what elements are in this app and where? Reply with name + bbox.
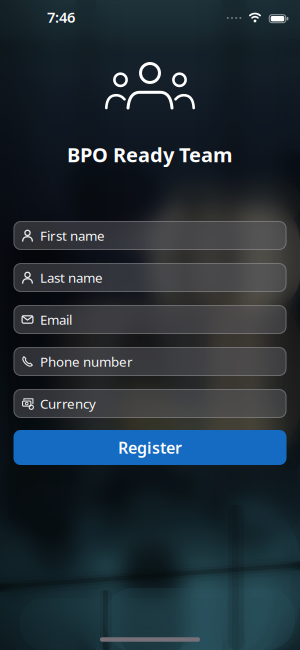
button[interactable]: Email	[13, 305, 286, 334]
staticText: 7:46	[47, 7, 75, 27]
staticText: Last name	[40, 269, 103, 286]
staticText: Phone number	[40, 353, 133, 370]
staticText: Email	[40, 311, 72, 328]
button[interactable]: Last name	[13, 263, 286, 292]
button[interactable]: Register	[13, 430, 286, 465]
staticText: Register	[118, 437, 182, 458]
button[interactable]: Currency	[13, 389, 286, 418]
button[interactable]: Phone number	[13, 347, 286, 376]
staticText: Currency	[40, 395, 96, 412]
staticText: BPO Ready Team	[67, 141, 233, 168]
staticText: First name	[40, 227, 105, 244]
button[interactable]: First name	[13, 221, 286, 250]
